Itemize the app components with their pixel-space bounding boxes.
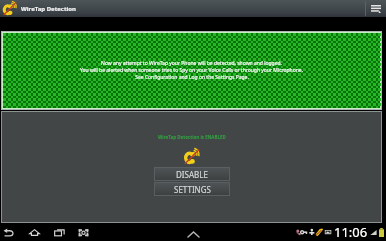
staticText: DISABLE <box>176 169 208 180</box>
button[interactable]: DISABLE <box>155 168 229 180</box>
button[interactable]: Recent apps <box>51 224 67 240</box>
staticText: SETTINGS <box>174 184 211 195</box>
staticText: Now any attempt to WireTap your Phone wi… <box>101 60 282 67</box>
button[interactable]: Screenshot <box>75 224 91 240</box>
staticText: 11:06 <box>334 223 368 241</box>
button[interactable]: Home <box>26 224 42 240</box>
button[interactable]: Back <box>0 224 16 240</box>
staticText: See Configuration and Log on the Setting… <box>135 74 249 81</box>
staticText: You will be alerted when someone tries t… <box>80 67 303 74</box>
button[interactable]: SETTINGS <box>155 183 229 195</box>
staticText: WireTap Detection is ENABLED <box>158 134 226 140</box>
button[interactable]: More options <box>366 0 386 17</box>
button[interactable]: Show notifications <box>182 228 204 241</box>
staticText: WireTap Detection <box>21 5 76 13</box>
